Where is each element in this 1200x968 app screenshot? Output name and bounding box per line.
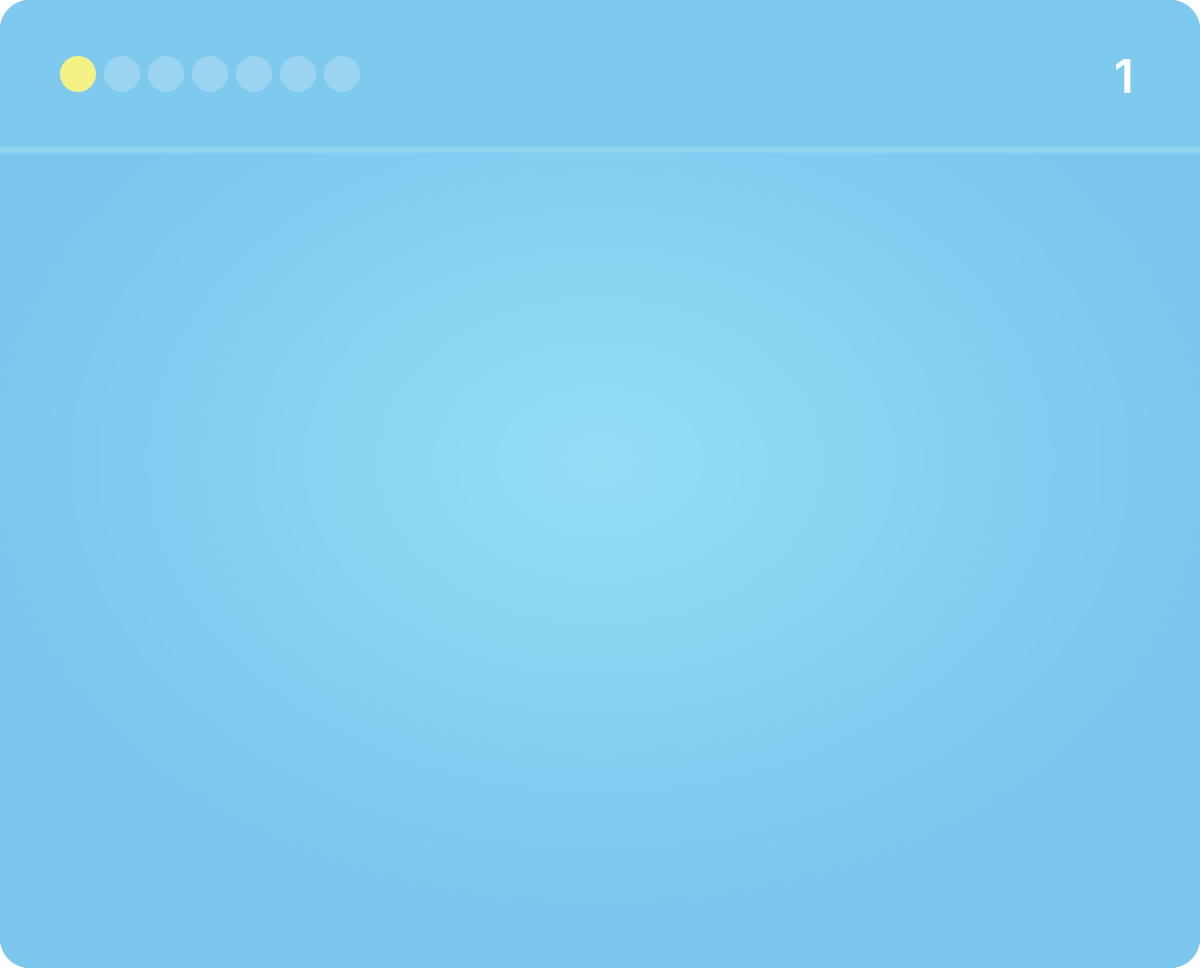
button[interactable]: Page 4 (192, 56, 228, 92)
staticText: 1 (1114, 48, 1134, 104)
button[interactable]: Page 7 (324, 56, 360, 92)
button[interactable]: Page 1 (60, 56, 96, 92)
button[interactable]: Page 1 of 7 (1114, 46, 1134, 102)
button[interactable]: Page 2 (104, 56, 140, 92)
button[interactable]: Page 3 (148, 56, 184, 92)
button[interactable]: Page 5 (236, 56, 272, 92)
button[interactable]: Page 6 (280, 56, 316, 92)
